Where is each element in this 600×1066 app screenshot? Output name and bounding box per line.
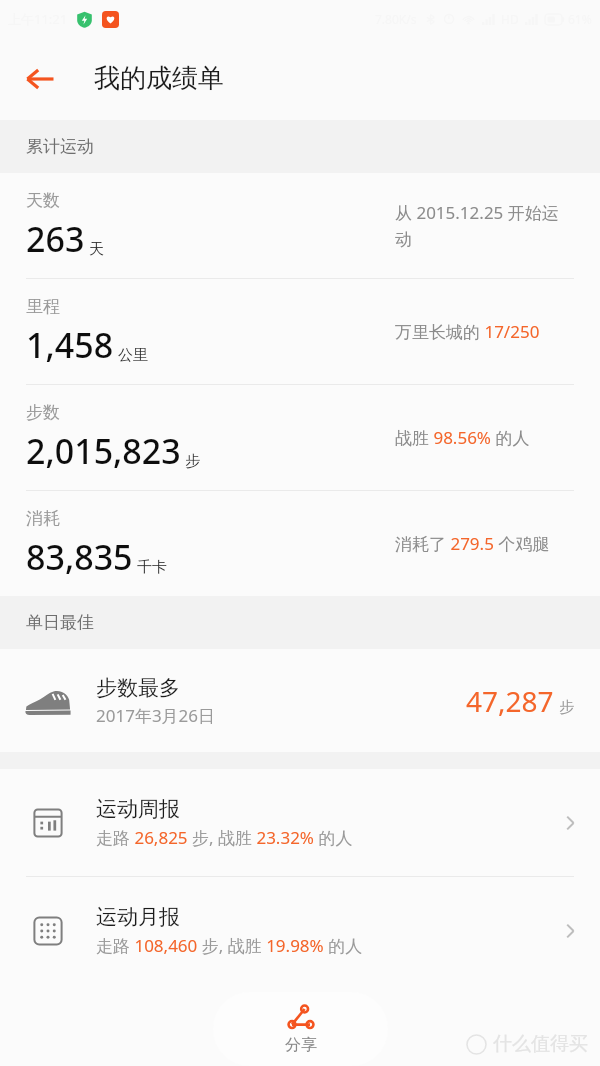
- staticText: 走路 108,460 步, 战胜 19.98% 的人: [96, 934, 363, 957]
- staticText: 263: [26, 216, 85, 262]
- button[interactable]: 步数最多: [0, 649, 600, 752]
- staticText: 天: [89, 240, 104, 259]
- staticText: 里程: [26, 296, 60, 317]
- staticText: 万里长城的 17/250: [395, 320, 540, 343]
- staticText: 2,015,823: [26, 428, 181, 474]
- staticText: 2017年3月26日: [96, 704, 216, 727]
- button[interactable]: 天数: [0, 173, 600, 278]
- staticText: 分享: [285, 1035, 317, 1055]
- button[interactable]: 里程: [0, 279, 600, 384]
- staticText: 战胜 98.56% 的人: [395, 426, 530, 449]
- staticText: 天数: [26, 190, 60, 211]
- staticText: 累计运动: [26, 136, 94, 157]
- staticText: 步: [185, 452, 200, 471]
- staticText: 运动周报: [96, 796, 180, 822]
- staticText: 从 2015.12.25 开始运动: [395, 201, 574, 250]
- button[interactable]: 消耗: [0, 491, 600, 596]
- staticText: 走路 26,825 步, 战胜 23.32% 的人: [96, 826, 353, 849]
- button[interactable]: 运动月报: [0, 877, 600, 984]
- button[interactable]: 运动周报: [0, 769, 600, 876]
- staticText: 步: [559, 698, 574, 717]
- staticText: 千卡: [137, 558, 167, 577]
- staticText: 1,458: [26, 322, 114, 368]
- staticText: 83,835: [26, 534, 133, 580]
- staticText: 消耗: [26, 508, 60, 529]
- staticText: 公里: [118, 346, 148, 365]
- staticText: 47,287: [466, 682, 554, 720]
- staticText: 步数: [26, 402, 60, 423]
- staticText: 单日最佳: [26, 612, 94, 633]
- button[interactable]: 返回: [14, 53, 66, 105]
- staticText: 步数最多: [96, 675, 180, 701]
- staticText: 什么值得买: [493, 1032, 588, 1056]
- button[interactable]: 分享: [213, 992, 388, 1066]
- button[interactable]: 步数: [0, 385, 600, 490]
- staticText: 消耗了 279.5 个鸡腿: [395, 532, 550, 555]
- staticText: 我的成绩单: [94, 62, 224, 95]
- staticText: 运动月报: [96, 904, 180, 930]
